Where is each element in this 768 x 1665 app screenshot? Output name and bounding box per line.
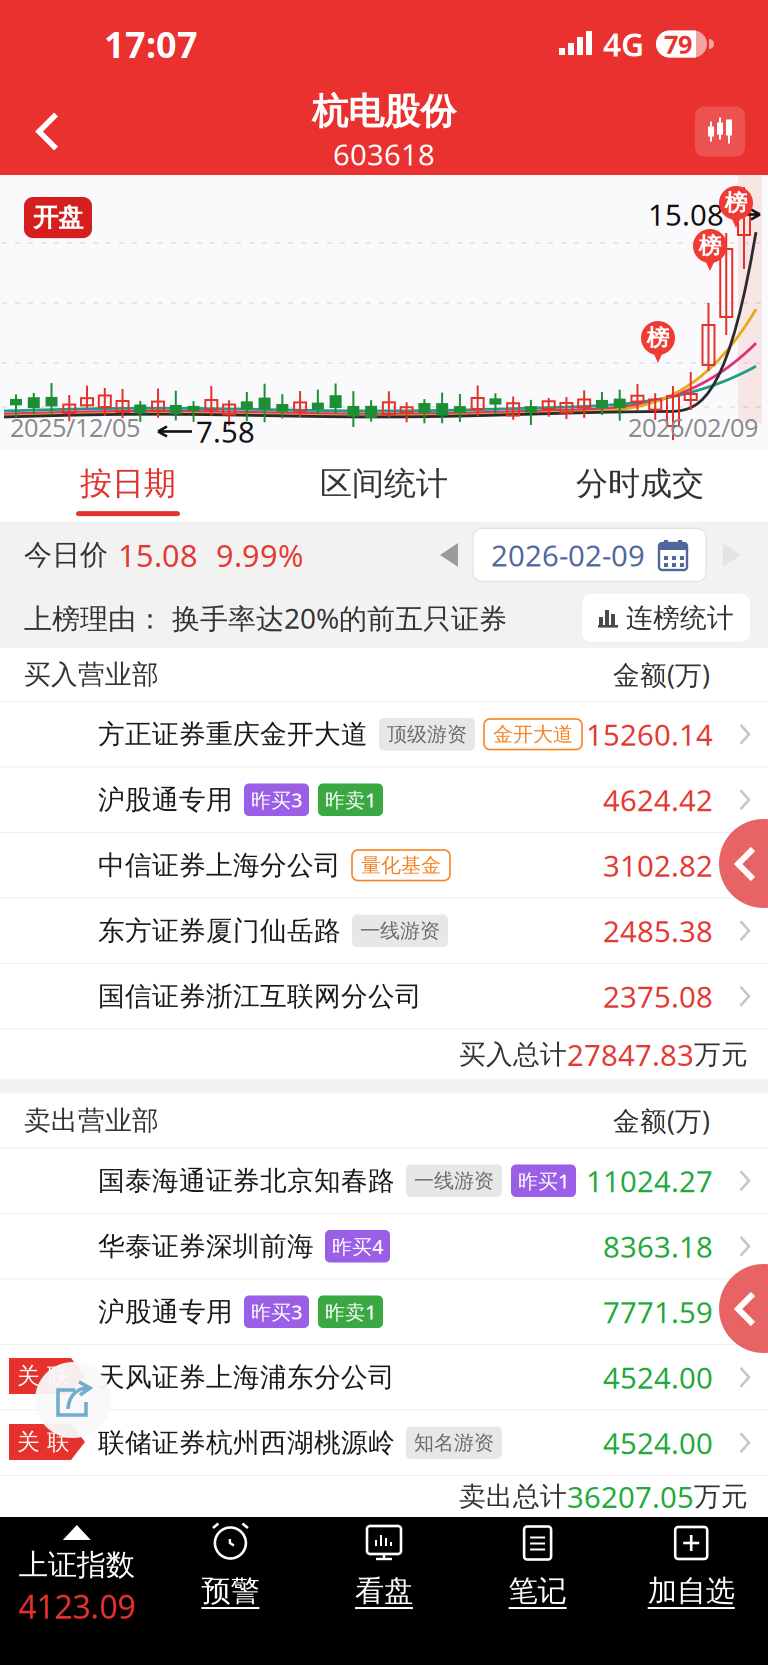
button[interactable]: 按日期 (0, 450, 256, 522)
button[interactable]: 笔记 (461, 1517, 614, 1665)
button[interactable]: 关联 (9, 1358, 85, 1394)
button[interactable]: 分时成交 (512, 450, 768, 522)
staticText: 上榜理由： 换手率达20%的前五只证券 (24, 599, 507, 637)
button[interactable]: 展开侧栏 (719, 1264, 768, 1353)
staticText: 关 联 (17, 1362, 70, 1390)
button[interactable]: 区间统计 (256, 450, 512, 522)
staticText: 4524.00 (603, 1358, 713, 1397)
staticText: 中信证券上海分公司 (98, 849, 341, 882)
button[interactable]: 中信证券上海分公司 (0, 833, 768, 897)
button[interactable]: 返回 (8, 91, 88, 171)
staticText: 一线游资 (414, 1168, 494, 1193)
staticText: 2026-02-09 (491, 535, 645, 574)
staticText: 金开大道 (493, 722, 573, 747)
staticText: 2026/02/09 (628, 410, 758, 444)
staticText: 知名游资 (414, 1430, 494, 1455)
staticText: 昨买3 (251, 786, 302, 813)
button[interactable]: 看盘 (307, 1517, 461, 1665)
staticText: 加自选 (648, 1573, 735, 1609)
button[interactable]: 展开侧栏 (719, 819, 768, 908)
staticText: 昨买3 (251, 1298, 302, 1325)
staticText: 79 (664, 27, 692, 61)
staticText: 15.08 (648, 195, 724, 234)
staticText: 4G (603, 23, 644, 65)
staticText: 17:07 (104, 20, 198, 68)
staticText: 榜 (698, 232, 721, 260)
button[interactable]: 2026-02-09 (473, 528, 706, 581)
staticText: 区间统计 (320, 464, 448, 503)
button[interactable]: 方正证券重庆金开大道 (0, 702, 768, 766)
staticText: 联储证券杭州西湖桃源岭 (98, 1426, 395, 1459)
button[interactable]: 预警 (154, 1517, 307, 1665)
button[interactable]: 关联 (9, 1424, 85, 1460)
staticText: 国信证券浙江互联网分公司 (98, 980, 422, 1013)
button[interactable]: 联储证券杭州西湖桃源岭 (0, 1410, 768, 1475)
staticText: 顶级游资 (387, 722, 467, 747)
button[interactable]: 上证指数 (0, 1517, 154, 1665)
staticText: 万元 (694, 1038, 748, 1071)
staticText: 15.08 (118, 535, 198, 575)
button[interactable]: 沪股通专用 (0, 767, 768, 832)
staticText: 关 联 (17, 1428, 70, 1456)
staticText: 7771.59 (603, 1292, 713, 1331)
staticText: 9.99% (216, 535, 303, 575)
staticText: 榜 (646, 324, 669, 352)
staticText: 昨卖1 (325, 1298, 376, 1325)
staticText: 2025/12/05 (10, 410, 140, 444)
staticText: 上证指数 (19, 1547, 135, 1583)
staticText: 7.58 (196, 412, 255, 451)
staticText: 沪股通专用 (98, 783, 233, 816)
button[interactable]: 沪股通专用 (0, 1279, 768, 1344)
button[interactable]: 上一日 (425, 529, 473, 581)
staticText: 量化基金 (361, 853, 441, 878)
staticText: 卖出营业部 (24, 1104, 159, 1137)
staticText: 连榜统计 (626, 602, 734, 634)
button[interactable]: 连榜统计 (582, 594, 750, 642)
staticText: 3102.82 (603, 846, 713, 885)
button[interactable]: 天风证券上海浦东分公司 (0, 1345, 768, 1409)
button[interactable]: 分享 (35, 1362, 111, 1438)
staticText: 预警 (201, 1573, 259, 1609)
staticText: 27847.83 (567, 1035, 694, 1074)
staticText: 15260.14 (586, 715, 713, 754)
button[interactable]: 国信证券浙江互联网分公司 (0, 964, 768, 1028)
staticText: 看盘 (355, 1573, 413, 1609)
staticText: 买入总计 (459, 1038, 567, 1071)
staticText: 2485.38 (603, 911, 713, 950)
staticText: 按日期 (80, 464, 176, 503)
staticText: 分时成交 (576, 464, 704, 503)
staticText: 天风证券上海浦东分公司 (98, 1361, 395, 1394)
staticText: 603618 (333, 135, 435, 174)
staticText: 金额(万) (613, 1103, 710, 1138)
staticText: 一线游资 (360, 918, 440, 943)
staticText: 榜 (724, 189, 747, 217)
staticText: 8363.18 (603, 1227, 713, 1266)
staticText: 方正证券重庆金开大道 (98, 718, 368, 751)
staticText: 4624.42 (603, 780, 713, 819)
button[interactable]: 华泰证券深圳前海 (0, 1214, 768, 1278)
staticText: 万元 (694, 1480, 748, 1513)
staticText: 杭电股份 (312, 89, 456, 134)
button[interactable]: 下一日 (706, 529, 758, 581)
staticText: 11024.27 (586, 1161, 713, 1200)
staticText: 2375.08 (603, 977, 713, 1016)
staticText: 国泰海通证券北京知春路 (98, 1164, 395, 1197)
staticText: 4524.00 (603, 1423, 713, 1462)
button[interactable]: 加自选 (614, 1517, 768, 1665)
staticText: 昨卖1 (325, 786, 376, 813)
staticText: 开盘 (33, 202, 83, 233)
staticText: 4123.09 (18, 1585, 135, 1627)
staticText: 今日价 (24, 538, 108, 572)
button[interactable]: 东方证券厦门仙岳路 (0, 898, 768, 963)
staticText: 华泰证券深圳前海 (98, 1230, 314, 1263)
staticText: 笔记 (509, 1573, 567, 1609)
button[interactable]: 国泰海通证券北京知春路 (0, 1148, 768, 1213)
staticText: 卖出总计 (459, 1480, 567, 1513)
staticText: 买入营业部 (24, 658, 159, 691)
button[interactable]: K线图 (680, 91, 760, 171)
staticText: 昨买1 (518, 1167, 569, 1194)
staticText: 36207.05 (567, 1477, 694, 1516)
staticText: 东方证券厦门仙岳路 (98, 914, 341, 947)
staticText: 昨买4 (332, 1233, 383, 1260)
staticText: 沪股通专用 (98, 1295, 233, 1328)
